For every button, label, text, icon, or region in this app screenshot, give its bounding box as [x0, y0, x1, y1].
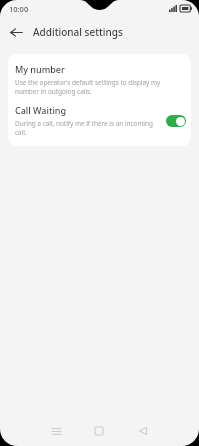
staticText: My number: [15, 63, 65, 75]
button[interactable]: Back: [5, 21, 27, 43]
button[interactable]: Call Waiting: [166, 115, 186, 127]
button[interactable]: Call Waiting: [8, 104, 191, 146]
staticText: 10:00: [9, 4, 29, 14]
button[interactable]: Home: [89, 421, 109, 441]
button[interactable]: Recent apps: [46, 421, 66, 441]
staticText: During a call, notify me if there is an …: [15, 119, 161, 137]
staticText: Use the operator's default settings to d…: [15, 78, 177, 96]
staticText: Call Waiting: [15, 104, 67, 116]
button[interactable]: My number: [8, 54, 191, 97]
staticText: Additional settings: [33, 25, 123, 39]
button[interactable]: Back: [133, 421, 153, 441]
